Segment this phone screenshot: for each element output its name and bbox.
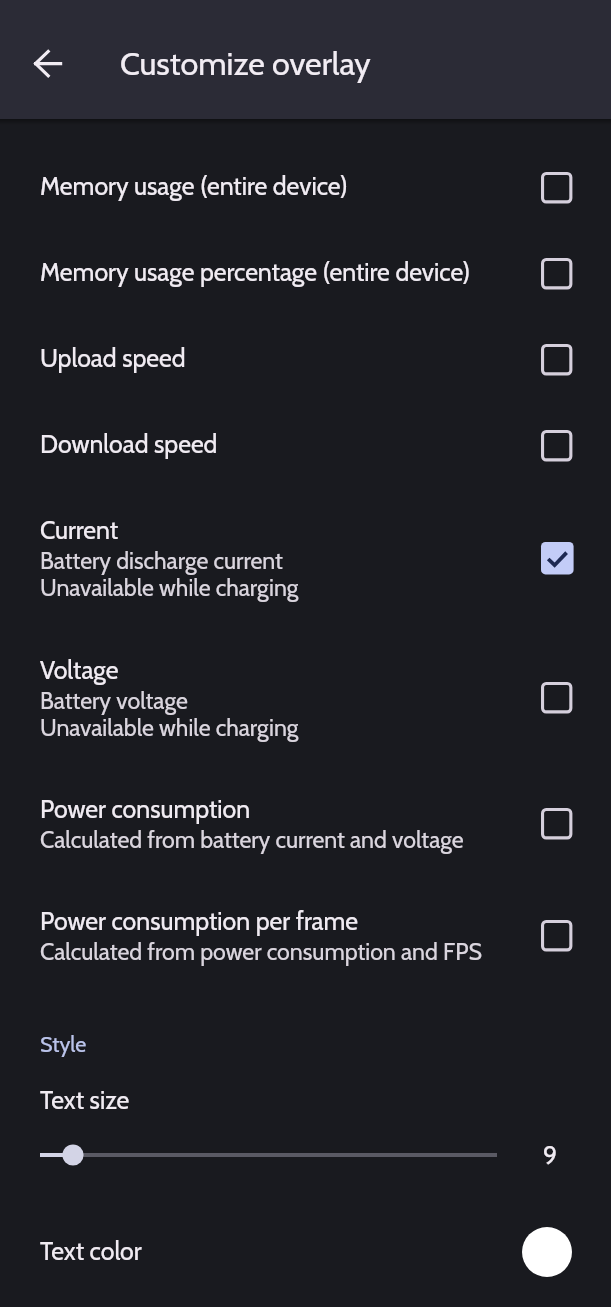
button[interactable]: Pick text color: [522, 1227, 572, 1277]
staticText: Upload speed: [40, 343, 186, 373]
staticText: Text color: [40, 1236, 142, 1266]
button[interactable]: [0, 897, 611, 976]
button[interactable]: [0, 646, 611, 752]
staticText: Calculated from power consumption and FP…: [40, 938, 482, 966]
button[interactable]: [0, 506, 611, 612]
staticText: Calculated from battery current and volt…: [40, 826, 464, 854]
button[interactable]: [0, 785, 611, 864]
staticText: Memory usage (entire device): [40, 171, 348, 201]
staticText: Unavailable while charging: [40, 574, 299, 602]
staticText: 9: [543, 1140, 558, 1170]
staticText: Power consumption: [40, 794, 251, 824]
staticText: Power consumption per frame: [40, 906, 358, 936]
staticText: Battery voltage: [40, 687, 188, 715]
button[interactable]: [0, 1214, 611, 1292]
staticText: Customize overlay: [120, 44, 371, 83]
staticText: Text size: [40, 1085, 130, 1115]
button[interactable]: Navigate up: [23, 39, 72, 88]
staticText: Voltage: [40, 655, 119, 685]
button[interactable]: [0, 420, 611, 469]
staticText: Memory usage percentage (entire device): [40, 257, 471, 287]
button[interactable]: [0, 334, 611, 383]
button[interactable]: Text size: [28, 1133, 512, 1177]
staticText: Battery discharge current: [40, 547, 283, 575]
button[interactable]: [0, 162, 611, 211]
staticText: Style: [40, 1031, 87, 1057]
staticText: Download speed: [40, 429, 218, 459]
staticText: Current: [40, 515, 119, 545]
button[interactable]: [0, 248, 611, 297]
staticText: Unavailable while charging: [40, 714, 299, 742]
